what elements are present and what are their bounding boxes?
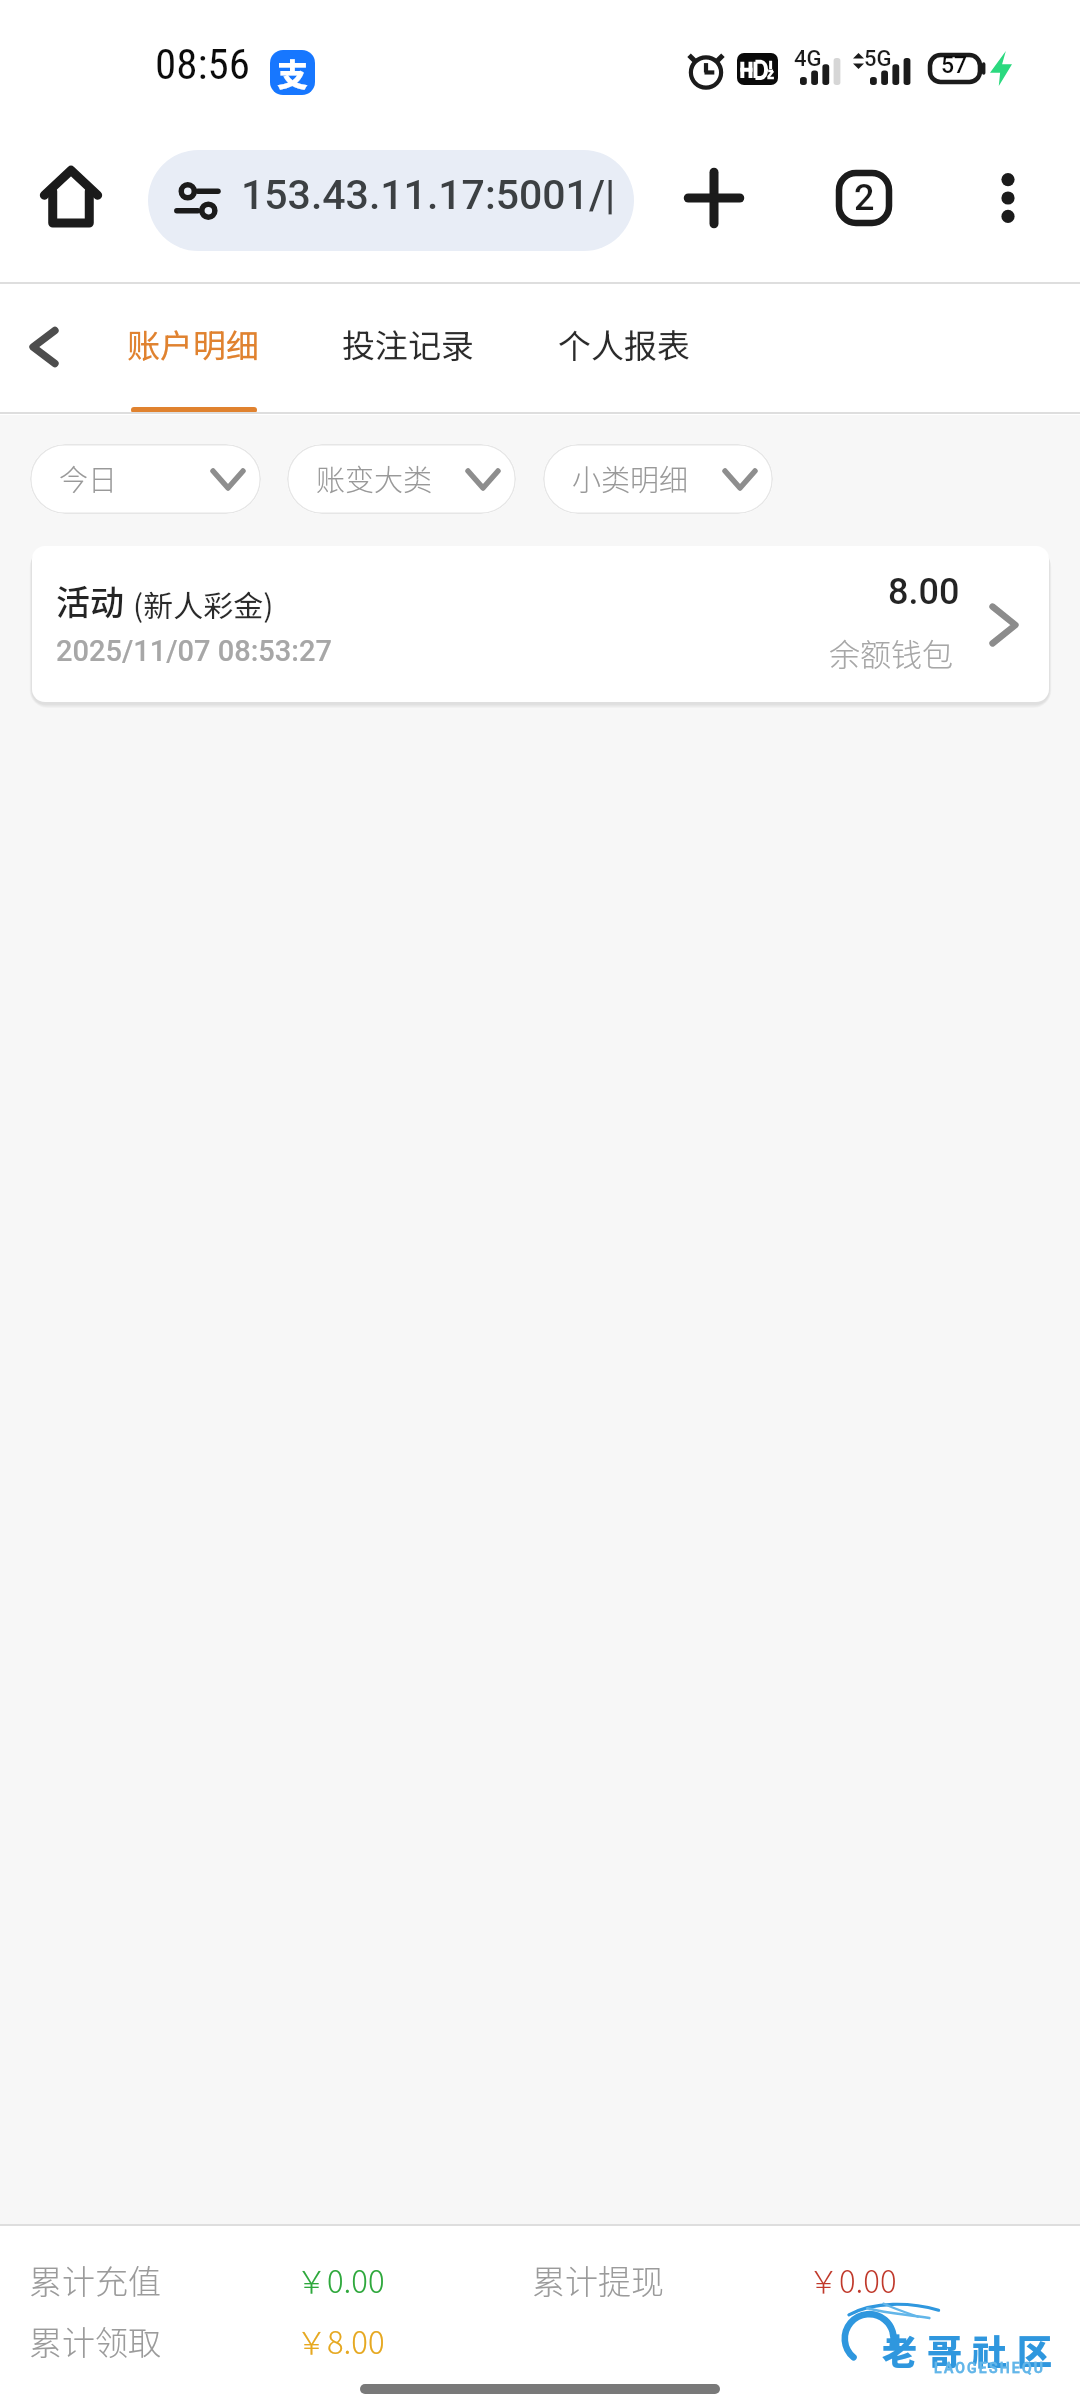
button[interactable]: 账户明细 xyxy=(98,284,288,412)
staticText: 今日 xyxy=(59,457,118,499)
staticText: 5G xyxy=(864,46,892,72)
staticText: ￥0.00 xyxy=(808,2257,897,2302)
button[interactable]: 活动 xyxy=(32,546,1049,702)
button[interactable]: 153.43.11.17:5001/| xyxy=(148,150,634,251)
staticText: 153.43.11.17:5001/| xyxy=(241,171,616,219)
button[interactable]: More options xyxy=(948,138,1068,258)
staticText: 账户明细 xyxy=(127,320,259,368)
staticText: 4G xyxy=(794,46,822,72)
staticText: (新人彩金) xyxy=(133,582,274,625)
staticText: 8.00 xyxy=(888,571,960,613)
button[interactable]: New tab xyxy=(654,138,774,258)
staticText: 累计充值 xyxy=(29,2256,161,2304)
button[interactable]: Tabs, 2 open xyxy=(804,138,924,258)
staticText: 累计领取 xyxy=(29,2317,161,2365)
staticText: 余额钱包 xyxy=(829,630,953,675)
staticText: 投注记录 xyxy=(342,320,474,368)
staticText: ￥0.00 xyxy=(296,2257,385,2302)
staticText: 支 xyxy=(277,50,308,95)
staticText: 2 xyxy=(854,177,875,219)
staticText: 08:56 xyxy=(155,39,250,89)
staticText: LAOGESHEQU xyxy=(934,2360,1046,2376)
button[interactable]: 账变大类 xyxy=(287,444,516,514)
button[interactable]: Back xyxy=(0,284,92,412)
staticText: 老哥社区 xyxy=(882,2324,1063,2375)
staticText: 账变大类 xyxy=(316,457,433,499)
staticText: 57 xyxy=(941,52,968,79)
staticText: 活动 xyxy=(56,576,124,625)
button[interactable]: 投注记录 xyxy=(313,284,503,412)
button[interactable]: 小类明细 xyxy=(543,444,773,514)
staticText: 个人报表 xyxy=(558,320,690,368)
button[interactable]: 个人报表 xyxy=(529,284,719,412)
button[interactable]: 今日 xyxy=(30,444,261,514)
staticText: 累计提现 xyxy=(532,2256,664,2304)
staticText: ￥8.00 xyxy=(296,2318,385,2363)
staticText: 2025/11/07 08:53:27 xyxy=(56,634,332,668)
button[interactable]: Home xyxy=(12,138,130,256)
staticText: 小类明细 xyxy=(572,457,689,499)
